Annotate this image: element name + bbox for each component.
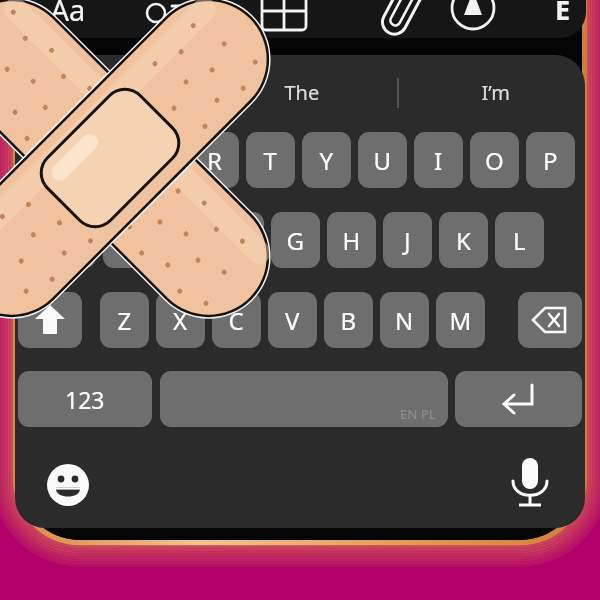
button[interactable]	[18, 371, 152, 427]
button[interactable]	[190, 132, 239, 188]
button[interactable]	[268, 292, 317, 348]
button[interactable]	[103, 212, 152, 268]
button[interactable]: Enter	[455, 371, 582, 427]
button[interactable]: Insert table	[250, 0, 308, 38]
button[interactable]	[159, 212, 208, 268]
button[interactable]	[271, 212, 320, 268]
button[interactable]	[439, 212, 488, 268]
button[interactable]	[134, 132, 183, 188]
button[interactable]	[156, 292, 205, 348]
button[interactable]: Attach file	[372, 0, 430, 38]
button[interactable]: More options	[542, 0, 600, 38]
button[interactable]: Text format	[40, 0, 98, 38]
button[interactable]	[324, 292, 373, 348]
button[interactable]	[526, 132, 575, 188]
button[interactable]	[358, 132, 407, 188]
button[interactable]: Shift	[18, 292, 82, 348]
button[interactable]	[383, 212, 432, 268]
button[interactable]	[302, 132, 351, 188]
button[interactable]: Emoji	[38, 456, 98, 514]
button[interactable]	[436, 292, 485, 348]
button[interactable]: Voice input	[500, 456, 560, 514]
button[interactable]	[380, 292, 429, 348]
button[interactable]	[47, 212, 96, 268]
button[interactable]	[439, 70, 553, 114]
button[interactable]	[212, 292, 261, 348]
button[interactable]	[327, 212, 376, 268]
button[interactable]: Space	[160, 371, 448, 427]
button[interactable]	[245, 70, 359, 114]
button[interactable]	[495, 212, 544, 268]
button[interactable]: Insert link	[130, 0, 188, 38]
button[interactable]	[78, 132, 127, 188]
button[interactable]: Draw	[446, 0, 504, 38]
button[interactable]	[215, 212, 264, 268]
button[interactable]	[414, 132, 463, 188]
button[interactable]	[246, 132, 295, 188]
button[interactable]	[22, 132, 71, 188]
button[interactable]: Backspace	[518, 292, 582, 348]
button[interactable]	[470, 132, 519, 188]
button[interactable]	[100, 292, 149, 348]
